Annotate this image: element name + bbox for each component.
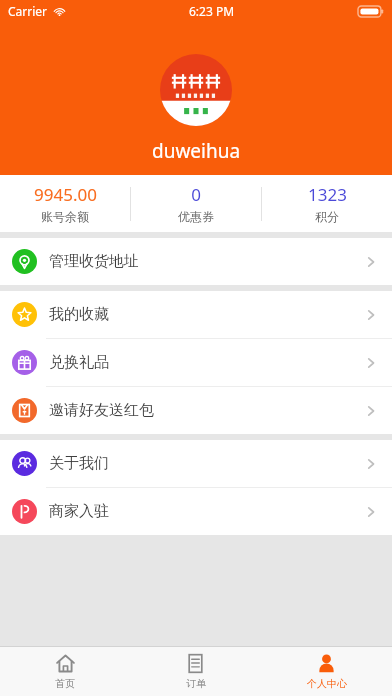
- staticText: 兑换礼品: [49, 353, 109, 372]
- button[interactable]: 邀请好友送红包: [0, 387, 392, 434]
- staticText: 账号余额: [41, 209, 89, 224]
- button[interactable]: 1323: [262, 183, 392, 224]
- button[interactable]: 9945.00: [0, 183, 130, 224]
- staticText: 个人中心: [307, 677, 347, 690]
- staticText: 积分: [315, 209, 339, 224]
- staticText: 订单: [186, 677, 206, 690]
- staticText: duweihua: [152, 138, 241, 164]
- staticText: 0: [191, 183, 201, 206]
- button[interactable]: 首页: [0, 647, 130, 696]
- button[interactable]: 商家入驻: [0, 488, 392, 535]
- staticText: 关于我们: [49, 454, 109, 473]
- staticText: 1323: [308, 183, 347, 206]
- staticText: Carrier: [8, 3, 48, 19]
- staticText: 商家入驻: [49, 502, 109, 521]
- staticText: 9945.00: [34, 183, 97, 206]
- staticText: 6:23 PM: [189, 3, 235, 19]
- staticText: 我的收藏: [49, 305, 109, 324]
- button[interactable]: 关于我们: [0, 440, 392, 487]
- staticText: 优惠券: [178, 209, 214, 224]
- staticText: 首页: [55, 677, 75, 690]
- button[interactable]: 0: [131, 183, 261, 224]
- staticText: 邀请好友送红包: [49, 401, 154, 420]
- button[interactable]: 订单: [130, 647, 261, 696]
- button[interactable]: 个人中心: [261, 647, 392, 696]
- button[interactable]: 兑换礼品: [0, 339, 392, 386]
- button[interactable]: 管理收货地址: [0, 238, 392, 285]
- button[interactable]: 我的收藏: [0, 291, 392, 338]
- staticText: 管理收货地址: [49, 252, 139, 271]
